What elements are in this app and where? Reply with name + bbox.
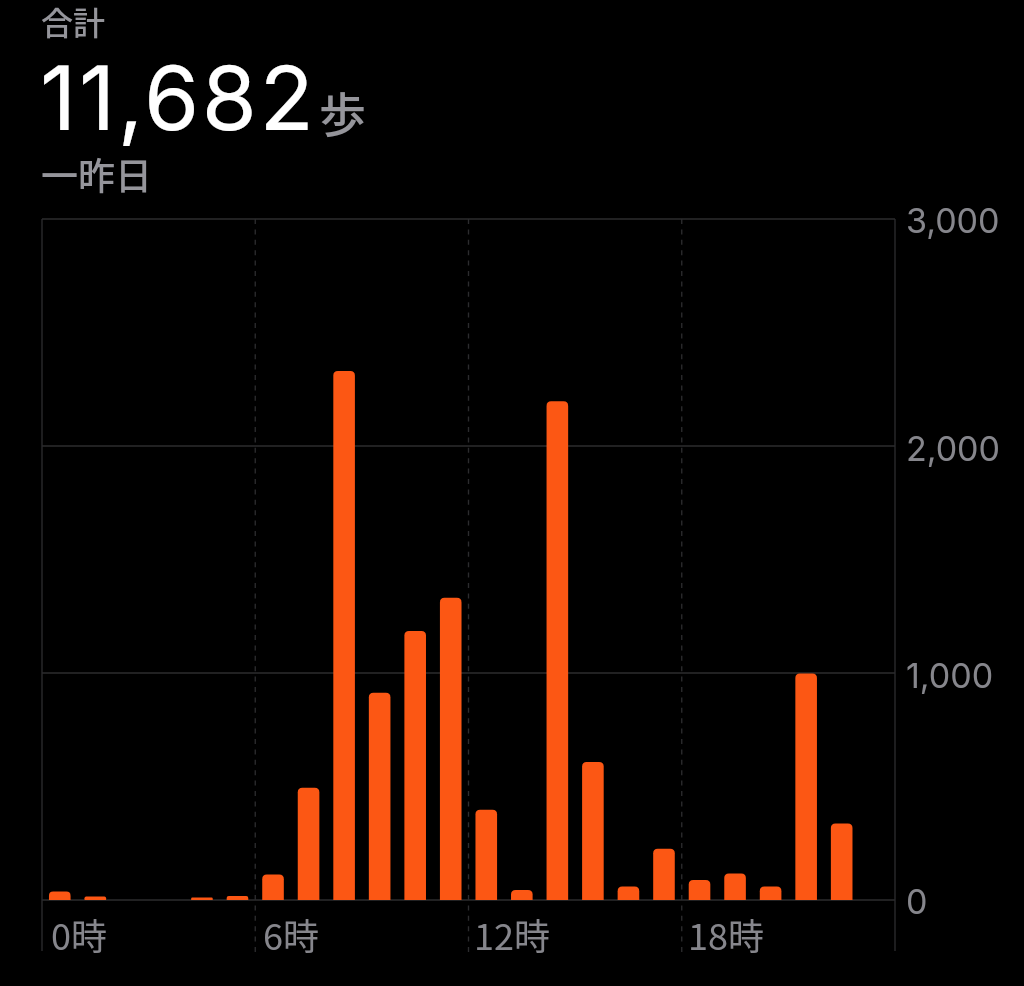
button[interactable]: 合計 — [0, 0, 1024, 205]
staticText: 0時 — [51, 908, 107, 960]
staticText: 一昨日 — [41, 147, 152, 201]
staticText: 12時 — [474, 908, 550, 960]
staticText: 18時 — [688, 908, 764, 960]
staticText: 2,000 — [906, 428, 1001, 469]
staticText: 0 — [906, 881, 928, 922]
staticText: 1,000 — [906, 655, 994, 696]
staticText: 合計 — [41, 0, 106, 44]
button[interactable]: 歩数グラフ — [0, 205, 1024, 986]
staticText: 6時 — [263, 908, 319, 960]
staticText: 歩 — [319, 77, 366, 145]
staticText: 11,682 — [40, 44, 317, 152]
staticText: 3,000 — [906, 200, 1000, 241]
